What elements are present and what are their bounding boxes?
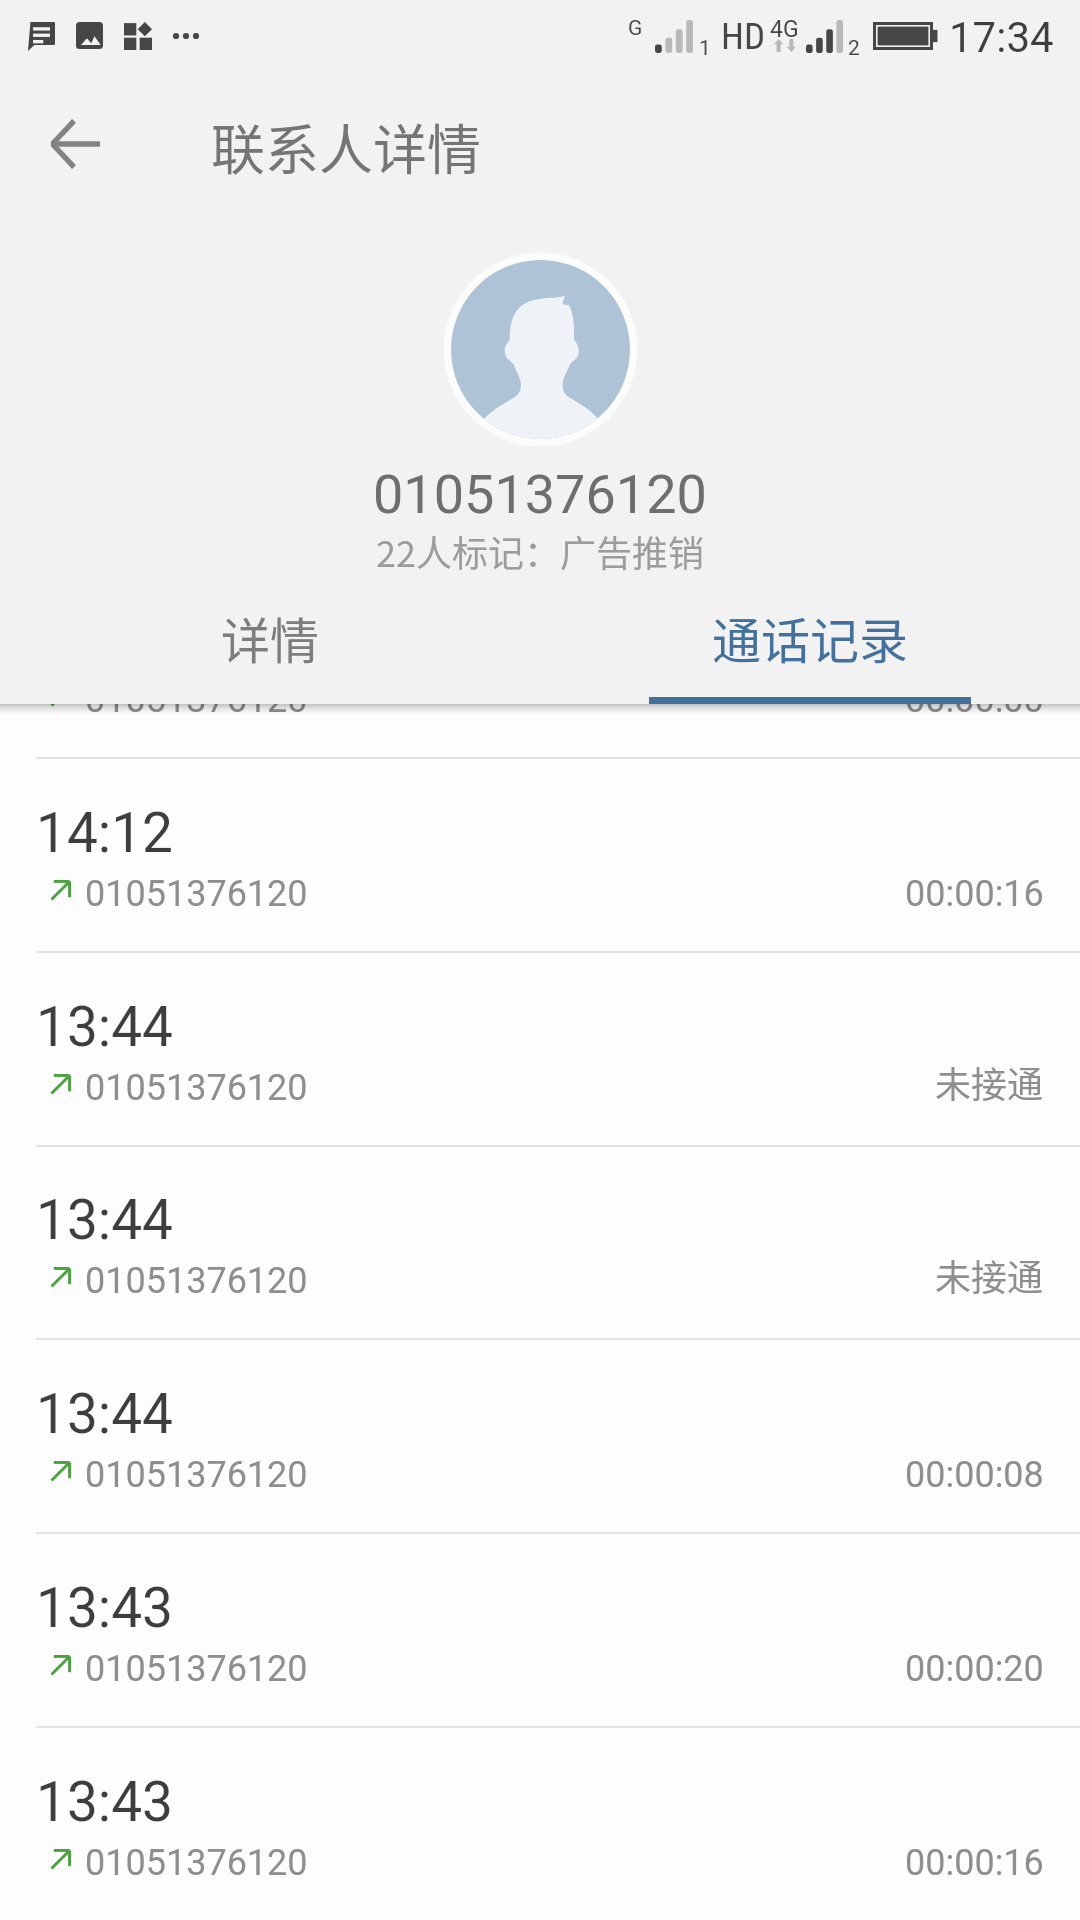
button[interactable]: 13:44 (0, 953, 1080, 1147)
staticText: G (628, 16, 643, 41)
staticText: HD (721, 15, 766, 58)
staticText: 01051376120 (85, 1067, 308, 1109)
staticText: 联系人详情 (211, 107, 481, 185)
staticText: 01051376120 (85, 1260, 308, 1302)
staticText: 01051376120 (85, 1648, 308, 1690)
staticText: 01051376120 (85, 1454, 308, 1496)
staticText: 1 (699, 36, 711, 61)
staticText: 13:44 (36, 1382, 173, 1446)
staticText: 01051376120 (373, 463, 707, 526)
button[interactable]: 14:12 (0, 759, 1080, 953)
staticText: 22人标记：广告推销 (376, 525, 704, 577)
button[interactable]: Back (35, 104, 115, 184)
staticText: 17:34 (949, 13, 1054, 62)
staticText: 01051376120 (85, 873, 308, 915)
staticText: 13:43 (36, 1770, 173, 1834)
button[interactable]: 13:44 (0, 1340, 1080, 1534)
staticText: 00:00:20 (905, 1648, 1044, 1690)
staticText: 00:00:16 (905, 873, 1044, 915)
staticText: 13:44 (36, 1188, 173, 1252)
staticText: 00:00:16 (905, 1842, 1044, 1884)
staticText: 00:00:08 (905, 1454, 1044, 1496)
staticText: 13:43 (36, 1576, 173, 1640)
button[interactable]: 13:44 (0, 1146, 1080, 1340)
staticText: 详情 (221, 602, 320, 673)
staticText: 2 (848, 36, 860, 61)
staticText: 4G (770, 16, 799, 43)
staticText: 通话记录 (712, 602, 909, 673)
button[interactable]: 13:43 (0, 1728, 1080, 1920)
button[interactable]: 13:43 (0, 1534, 1080, 1728)
button[interactable]: 14:13 (0, 565, 1080, 759)
staticText: 00:00:00 (905, 679, 1044, 721)
staticText: 14:12 (36, 801, 173, 865)
staticText: 未接通 (935, 1056, 1044, 1108)
button[interactable]: 通话记录 (540, 592, 1080, 704)
staticText: 13:44 (36, 995, 173, 1059)
staticText: 未接通 (935, 1249, 1044, 1301)
staticText: 01051376120 (85, 1842, 308, 1884)
button[interactable]: 详情 (0, 592, 540, 704)
staticText: 01051376120 (85, 679, 308, 721)
